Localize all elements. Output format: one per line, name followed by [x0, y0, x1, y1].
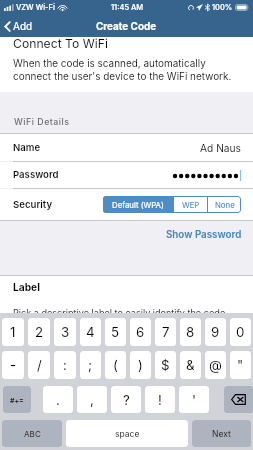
button[interactable]: Add	[0, 15, 39, 37]
staticText: !	[158, 392, 162, 408]
staticText: WEP	[182, 200, 200, 209]
staticText: space	[115, 429, 140, 439]
staticText: /	[37, 357, 42, 373]
staticText: Default (WPA)	[112, 200, 164, 209]
staticText: 5	[111, 324, 120, 340]
button[interactable]: #+=	[3, 386, 31, 413]
button[interactable]: .	[43, 386, 73, 413]
button[interactable]: WEP	[174, 196, 207, 213]
button[interactable]: Show Password	[156, 221, 253, 249]
button[interactable]: 3	[54, 318, 76, 346]
staticText: .	[56, 392, 60, 408]
staticText: When the code is scanned, automatically …	[13, 57, 237, 82]
staticText: 100%	[212, 3, 233, 12]
button[interactable]: Delete	[224, 386, 253, 413]
staticText: 1	[10, 324, 16, 340]
button[interactable]: ?	[111, 386, 141, 413]
staticText: ;	[88, 357, 93, 373]
button[interactable]: Default (WPA)	[103, 196, 173, 213]
staticText: Next	[212, 429, 231, 439]
button[interactable]: $	[155, 351, 176, 379]
staticText: Label	[13, 281, 40, 293]
staticText: @	[209, 357, 222, 373]
staticText: 9	[211, 324, 220, 340]
staticText: Name	[13, 142, 41, 154]
button[interactable]: 4	[80, 318, 101, 346]
button[interactable]: )	[130, 351, 151, 379]
button[interactable]: ABC	[2, 420, 62, 447]
staticText: ,	[90, 392, 94, 408]
button[interactable]: 8	[180, 318, 201, 346]
staticText: Password	[13, 169, 59, 181]
button[interactable]: /	[28, 351, 50, 379]
staticText: 6	[136, 324, 145, 340]
button[interactable]: 7	[155, 318, 176, 346]
button[interactable]: -	[2, 351, 24, 379]
staticText: Create Code	[96, 20, 157, 32]
staticText: WiFi Details	[14, 116, 70, 127]
button[interactable]: Password	[0, 162, 253, 188]
button[interactable]: Name	[0, 134, 253, 161]
button[interactable]: 0	[230, 318, 251, 346]
staticText: (	[113, 357, 118, 373]
button[interactable]: space	[66, 420, 188, 447]
staticText: Connect To WiFi	[13, 36, 108, 51]
staticText: 0	[236, 324, 245, 340]
button[interactable]: Security	[0, 189, 253, 220]
button[interactable]: Next	[192, 420, 251, 447]
staticText: Security	[13, 199, 53, 211]
button[interactable]: "	[230, 351, 251, 379]
staticText: 7	[162, 324, 170, 340]
button[interactable]: 6	[130, 318, 151, 346]
staticText: VZW Wi-Fi	[16, 3, 55, 12]
staticText: Show Password	[166, 229, 242, 241]
staticText: Ad Naus	[200, 142, 241, 154]
button[interactable]: @	[205, 351, 226, 379]
button[interactable]: 9	[205, 318, 226, 346]
button[interactable]: None	[208, 196, 241, 213]
staticText: :	[63, 357, 67, 373]
button[interactable]: 1	[2, 318, 24, 346]
button[interactable]: (	[105, 351, 126, 379]
button[interactable]: 2	[28, 318, 50, 346]
button[interactable]: ,	[77, 386, 107, 413]
staticText: Pick a descriptive label to easily ident…	[13, 307, 228, 313]
staticText: 3	[61, 324, 70, 340]
staticText: "	[237, 357, 244, 373]
staticText: 11:45 AM	[111, 3, 144, 12]
button[interactable]: ;	[80, 351, 101, 379]
staticText: ?	[123, 392, 130, 408]
staticText: ABC	[24, 429, 41, 439]
staticText: 8	[186, 324, 195, 340]
staticText: Add	[13, 20, 33, 32]
staticText: &	[186, 357, 195, 373]
staticText: 4	[86, 324, 95, 340]
button[interactable]: !	[145, 386, 175, 413]
button[interactable]: &	[180, 351, 201, 379]
staticText: -	[10, 357, 17, 373]
staticText: None	[215, 200, 235, 209]
button[interactable]: '	[179, 386, 209, 413]
staticText: )	[138, 357, 143, 373]
button[interactable]: :	[54, 351, 76, 379]
staticText: '	[192, 392, 196, 408]
staticText: 2	[35, 324, 44, 340]
staticText: $	[161, 357, 170, 373]
staticText: #+=	[10, 396, 24, 404]
button[interactable]: 5	[105, 318, 126, 346]
